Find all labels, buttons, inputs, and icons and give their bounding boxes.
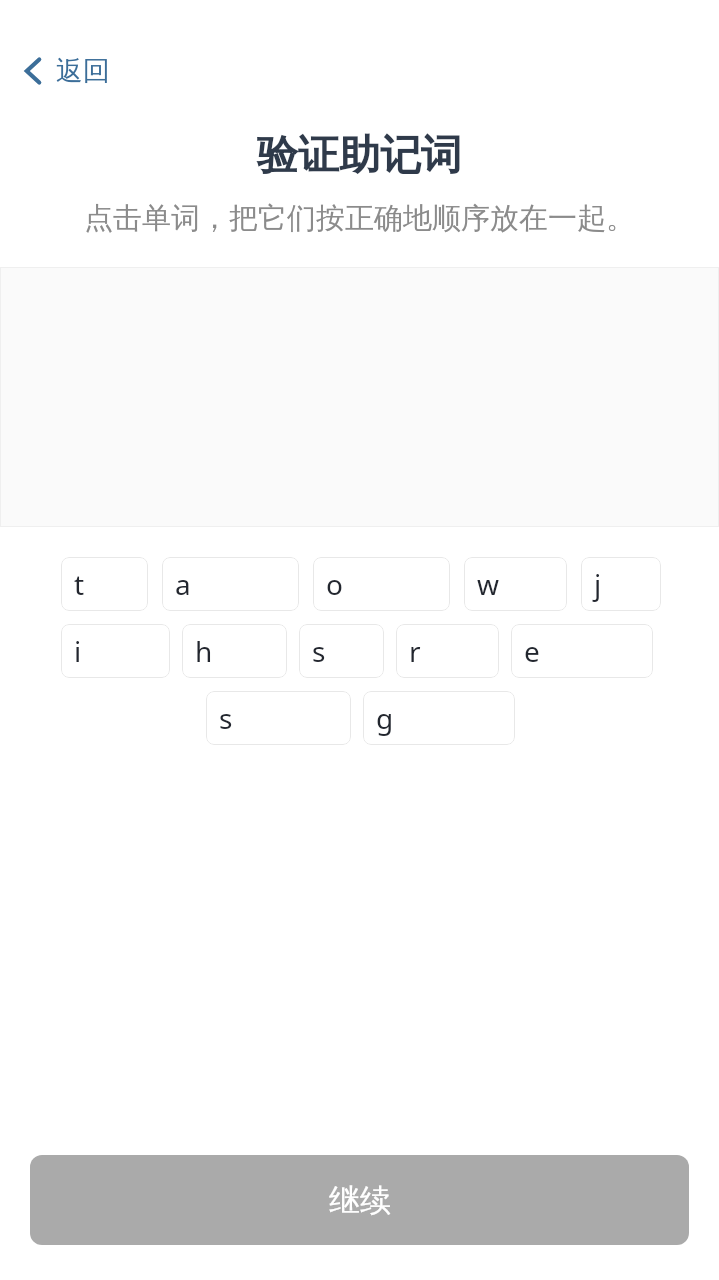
staticText: j <box>594 565 602 603</box>
button[interactable]: s <box>206 691 351 745</box>
staticText: i <box>74 632 82 670</box>
button[interactable]: o <box>313 557 450 611</box>
staticText: g <box>376 699 394 737</box>
button[interactable]: r <box>396 624 499 678</box>
staticText: 点击单词，把它们按正确地顺序放在一起。 <box>40 200 679 237</box>
staticText: a <box>175 565 191 603</box>
button[interactable]: e <box>511 624 653 678</box>
button[interactable]: a <box>162 557 299 611</box>
staticText: h <box>195 632 213 670</box>
staticText: e <box>524 632 540 670</box>
staticText: 验证助记词 <box>0 130 719 182</box>
button[interactable]: s <box>299 624 384 678</box>
button[interactable]: j <box>581 557 661 611</box>
button[interactable]: i <box>61 624 170 678</box>
staticText: t <box>74 565 85 603</box>
button[interactable]: w <box>464 557 567 611</box>
button[interactable]: t <box>61 557 148 611</box>
staticText: s <box>219 699 233 737</box>
button[interactable]: 继续 <box>30 1155 689 1245</box>
button[interactable]: g <box>363 691 515 745</box>
staticText: r <box>409 632 421 670</box>
button[interactable]: h <box>182 624 287 678</box>
staticText: 继续 <box>329 1181 391 1220</box>
staticText: w <box>477 565 500 603</box>
button[interactable]: 返回 <box>12 48 118 94</box>
staticText: 返回 <box>56 54 110 88</box>
staticText: o <box>326 565 343 603</box>
staticText: s <box>312 632 326 670</box>
